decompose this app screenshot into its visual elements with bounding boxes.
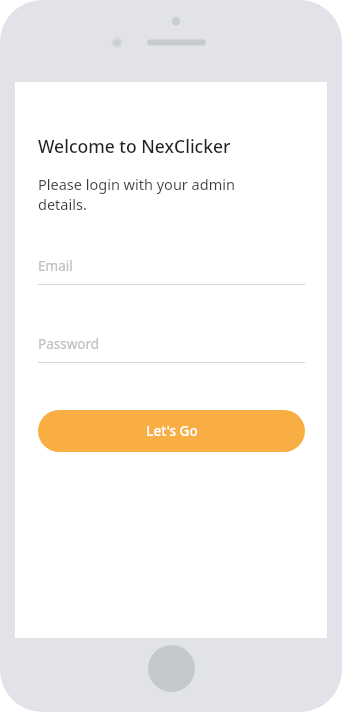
button[interactable]: Email <box>38 257 305 285</box>
staticText: Please login with your admin details. <box>38 174 270 215</box>
staticText: Email <box>38 257 73 275</box>
button[interactable]: Home <box>148 645 195 692</box>
button[interactable]: Let's Go <box>38 410 305 452</box>
staticText: Password <box>38 335 100 353</box>
staticText: Let's Go <box>146 422 198 440</box>
staticText: Welcome to NexClicker <box>38 134 231 158</box>
button[interactable]: Password <box>38 335 305 363</box>
